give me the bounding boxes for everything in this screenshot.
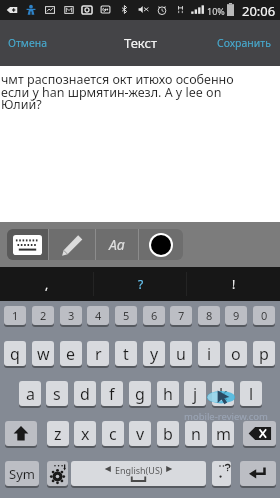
staticText: v [136, 423, 145, 445]
button[interactable]: f [101, 381, 123, 406]
button[interactable]: Pen [49, 229, 95, 260]
button[interactable]: g [129, 381, 151, 406]
staticText: t [123, 343, 129, 365]
staticText: ? [138, 276, 144, 292]
staticText: Текст [124, 34, 157, 52]
staticText: 5 [123, 308, 130, 323]
staticText: Отмена [8, 36, 48, 50]
staticText: mobile-review.com [184, 410, 268, 423]
staticText: p [259, 343, 269, 365]
button[interactable]: Space [71, 461, 206, 486]
staticText: n [191, 423, 201, 445]
staticText: 0 [261, 308, 268, 323]
button[interactable]: j [184, 381, 206, 406]
staticText: 7 [178, 308, 185, 323]
staticText: d [80, 383, 90, 405]
staticText: r [95, 343, 102, 365]
button[interactable]: ? [94, 267, 187, 301]
staticText: s [53, 383, 61, 405]
staticText: Сохранить [217, 36, 271, 50]
button[interactable]: r [87, 341, 109, 366]
button[interactable]: d [74, 381, 96, 406]
staticText: c [109, 423, 117, 445]
staticText: m [216, 423, 231, 445]
button[interactable]: Punctuation [212, 461, 231, 486]
button[interactable]: Сохранить [208, 20, 280, 66]
button[interactable]: Colour [139, 229, 183, 260]
staticText: 6 [151, 308, 158, 323]
staticText: g [135, 383, 145, 405]
button[interactable]: Отмена [0, 20, 56, 66]
button[interactable]: i [198, 341, 220, 366]
staticText: ! [232, 276, 236, 292]
staticText: Sym [9, 465, 35, 483]
button[interactable]: c [102, 421, 124, 446]
button[interactable]: e [60, 341, 82, 366]
button[interactable]: Sym [5, 461, 39, 486]
button[interactable]: Enter [240, 461, 276, 486]
staticText: o [231, 343, 241, 365]
button[interactable]: Settings [47, 461, 68, 486]
button[interactable]: 3 [60, 306, 82, 325]
button[interactable]: p [253, 341, 275, 366]
button[interactable]: 2 [32, 306, 54, 325]
staticText: English(US) [115, 464, 163, 476]
staticText: , [45, 276, 49, 292]
button[interactable]: w [32, 341, 54, 366]
staticText: b [163, 423, 173, 445]
button[interactable]: Backspace [243, 421, 276, 446]
button[interactable]: q [4, 341, 26, 366]
button[interactable]: 7 [170, 306, 192, 325]
staticText: z [54, 423, 62, 445]
staticText: чмт распознается окт итюхо особенно если… [1, 71, 247, 112]
button[interactable]: 8 [198, 306, 220, 325]
staticText: 4 [95, 308, 102, 323]
staticText: 8 [206, 308, 213, 323]
button[interactable]: k [212, 381, 234, 406]
staticText: q [10, 343, 20, 365]
button[interactable]: v [129, 421, 151, 446]
staticText: 2 [40, 308, 47, 323]
button[interactable]: 1 [4, 306, 26, 325]
staticText: 20:06 [242, 2, 276, 20]
button[interactable]: 5 [115, 306, 137, 325]
staticText: a [26, 383, 35, 405]
staticText: j [193, 383, 198, 405]
button[interactable]: z [47, 421, 69, 446]
staticText: y [150, 343, 159, 365]
staticText: i [207, 343, 212, 365]
button[interactable]: m [212, 421, 234, 446]
button[interactable]: Keyboard [7, 229, 48, 260]
button[interactable]: b [157, 421, 179, 446]
button[interactable]: o [225, 341, 247, 366]
staticText: k [219, 383, 228, 405]
button[interactable]: s [46, 381, 68, 406]
button[interactable]: l [240, 381, 262, 406]
button[interactable]: Aa [96, 229, 138, 260]
staticText: 1 [12, 308, 19, 323]
staticText: h [163, 383, 173, 405]
button[interactable]: x [74, 421, 96, 446]
staticText: u [176, 343, 186, 365]
staticText: l [249, 383, 254, 405]
button[interactable]: u [170, 341, 192, 366]
button[interactable]: t [115, 341, 137, 366]
button[interactable]: h [157, 381, 179, 406]
staticText: e [66, 343, 76, 365]
staticText: f [109, 383, 115, 405]
button[interactable]: n [185, 421, 207, 446]
staticText: x [81, 423, 90, 445]
staticText: w [37, 343, 50, 365]
button[interactable]: 4 [87, 306, 109, 325]
staticText: Aa [109, 235, 125, 254]
button[interactable]: Shift [5, 421, 37, 446]
staticText: 10% [207, 5, 225, 17]
button[interactable]: a [19, 381, 41, 406]
button[interactable]: ! [187, 267, 280, 301]
button[interactable]: 6 [143, 306, 165, 325]
button[interactable]: 0 [253, 306, 275, 325]
button[interactable]: , [0, 267, 94, 301]
staticText: 3 [68, 308, 75, 323]
button[interactable]: y [143, 341, 165, 366]
button[interactable]: 9 [225, 306, 247, 325]
